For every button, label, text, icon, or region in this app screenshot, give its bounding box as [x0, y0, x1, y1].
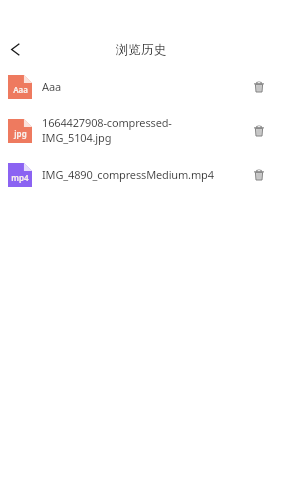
button[interactable]: Delete	[244, 72, 274, 102]
staticText: 1664427908-compressed-IMG_5104.jpg	[42, 115, 238, 145]
button[interactable]: Back	[0, 32, 32, 66]
staticText: IMG_4890_compressMedium.mp4	[42, 167, 238, 182]
button[interactable]: jpg	[0, 109, 281, 153]
staticText: 浏览历史	[116, 42, 166, 58]
staticText: Aaa	[42, 79, 238, 94]
button[interactable]: Delete	[244, 160, 274, 190]
staticText: mp4	[11, 172, 29, 183]
staticText: jpg	[14, 128, 27, 139]
button[interactable]: mp4	[0, 153, 281, 197]
button[interactable]: Delete	[244, 116, 274, 146]
button[interactable]: Aaa	[0, 65, 281, 109]
staticText: Aaa	[13, 84, 28, 95]
